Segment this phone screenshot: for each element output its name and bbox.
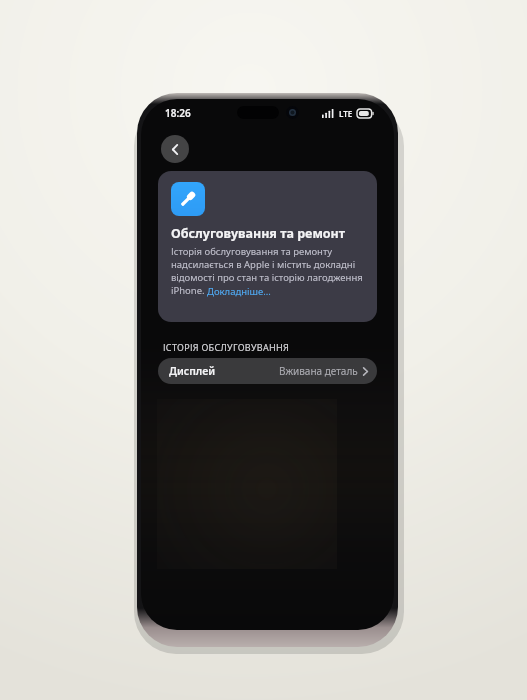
staticText: Історія обслуговування та ремонту надсил… [171, 245, 364, 297]
staticText: ІСТОРІЯ ОБСЛУГОВУВАННЯ [163, 341, 289, 353]
staticText: Докладніше... [207, 285, 271, 298]
staticText: LTE [339, 108, 353, 119]
staticText: 18:26 [165, 106, 191, 120]
staticText: Обслуговування та ремонт [171, 225, 346, 242]
staticText: Дисплей [169, 364, 216, 378]
button[interactable]: Back [161, 135, 189, 163]
button[interactable]: Дисплей [158, 358, 377, 384]
button[interactable]: Докладніше... [207, 285, 271, 298]
button[interactable]: Обслуговування та ремонт [158, 171, 377, 322]
staticText: Вживана деталь [279, 364, 358, 378]
